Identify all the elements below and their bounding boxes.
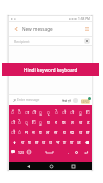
button[interactable]: Back <box>9 22 22 36</box>
button[interactable]: Settings <box>72 147 80 157</box>
staticText: ि <box>86 109 90 115</box>
staticText: SEND <box>81 100 90 104</box>
button[interactable]: त <box>68 117 76 127</box>
button[interactable]: ृ <box>44 107 52 117</box>
button[interactable]: Emoji <box>73 98 78 103</box>
button[interactable]: ण <box>68 137 75 147</box>
button[interactable]: व <box>37 127 44 137</box>
staticText: ं <box>18 129 21 135</box>
button[interactable]: थ <box>76 127 84 137</box>
button[interactable]: ङ <box>61 137 68 147</box>
staticText: ू <box>39 109 42 115</box>
button[interactable]: ै <box>16 107 23 117</box>
button[interactable]: 123 <box>17 147 25 157</box>
staticText: ु <box>39 119 42 125</box>
button[interactable]: ष <box>26 137 33 147</box>
button[interactable]: . <box>65 147 72 157</box>
staticText: र <box>55 119 57 125</box>
staticText: ि <box>32 119 36 125</box>
button[interactable]: ख <box>68 127 76 137</box>
button[interactable]: ू <box>37 107 44 117</box>
button[interactable]: ो <box>9 117 16 127</box>
button[interactable]: ध <box>47 137 54 147</box>
staticText: ै <box>18 109 21 115</box>
button[interactable]: ॅ <box>9 107 16 117</box>
button[interactable]: ं <box>16 127 23 137</box>
staticText: ण <box>70 139 74 145</box>
staticText: व <box>39 129 42 135</box>
button[interactable]: Back <box>24 162 32 170</box>
button[interactable]: ल <box>44 127 52 137</box>
button[interactable]: न <box>30 127 37 137</box>
button[interactable]: ो <box>68 107 76 117</box>
button[interactable]: भ <box>54 137 61 147</box>
button[interactable]: Recents <box>69 162 77 170</box>
button[interactable]: ् <box>23 117 30 127</box>
button[interactable]: ु <box>37 117 44 127</box>
button[interactable]: म <box>23 127 30 137</box>
staticText: ष <box>28 139 31 145</box>
button[interactable]: प <box>44 117 52 127</box>
staticText: ो <box>11 119 15 125</box>
button[interactable]: Change language <box>25 147 33 157</box>
button[interactable]: छ <box>33 137 40 147</box>
button[interactable]: च <box>76 117 84 127</box>
staticText: ळ <box>77 139 81 145</box>
staticText: े <box>55 109 58 115</box>
staticText: भ <box>56 139 60 145</box>
button[interactable]: ि <box>84 107 92 117</box>
staticText: त <box>71 119 74 125</box>
button[interactable]: Hindi keyword keyboard <box>2 63 99 76</box>
staticText: छ <box>86 129 90 135</box>
staticText: ो <box>70 109 74 115</box>
button[interactable]: Emoji <box>9 147 17 157</box>
staticText: 1:58 PM <box>78 17 90 21</box>
button[interactable]: Shift <box>9 137 19 147</box>
button[interactable]: ा <box>23 107 30 117</box>
button[interactable]: Home <box>47 162 55 170</box>
staticText: . <box>68 150 70 155</box>
button[interactable]: क <box>60 117 68 127</box>
staticText: ु <box>79 109 82 115</box>
staticText: ध <box>49 139 52 145</box>
button[interactable]: ी <box>30 107 37 117</box>
staticText: छ <box>35 139 39 145</box>
staticText: ङ <box>63 139 66 145</box>
staticText: य <box>63 129 66 135</box>
staticText: प <box>47 119 50 125</box>
button[interactable]: ॉ <box>60 107 68 117</box>
button[interactable]: य <box>60 127 68 137</box>
button[interactable]: स <box>52 127 60 137</box>
button[interactable]: ि <box>30 117 37 127</box>
button[interactable]: े <box>16 117 23 127</box>
button[interactable]: े <box>52 107 60 117</box>
staticText: ॅ <box>11 109 14 115</box>
staticText: कैसे हो <box>62 98 71 103</box>
staticText: थ <box>42 139 45 145</box>
staticText: श <box>21 139 25 145</box>
button[interactable]: ॉ <box>9 127 16 137</box>
button[interactable]: थ <box>40 137 47 147</box>
button[interactable]: ु <box>76 107 84 117</box>
button[interactable]: Space <box>33 147 65 157</box>
button[interactable]: Backspace <box>82 137 92 147</box>
staticText: स <box>54 129 58 135</box>
staticText: ा <box>25 109 29 115</box>
staticText: ट <box>87 119 90 125</box>
button[interactable]: SEND <box>81 99 90 104</box>
staticText: ॉ <box>11 129 15 135</box>
staticText: ् <box>25 119 28 125</box>
staticText: ृ <box>47 109 50 115</box>
staticText: े <box>18 119 21 125</box>
button[interactable]: ट <box>84 117 92 127</box>
button[interactable]: छ <box>84 127 92 137</box>
button[interactable]: More options <box>81 22 92 36</box>
button[interactable]: श <box>19 137 26 147</box>
button[interactable]: Add contact <box>84 38 90 44</box>
staticText: म <box>25 129 28 135</box>
button[interactable]: Enter <box>80 147 92 157</box>
staticText: New message <box>22 26 53 32</box>
button[interactable]: Attach <box>11 97 17 103</box>
button[interactable]: र <box>52 117 60 127</box>
button[interactable]: ळ <box>75 137 82 147</box>
